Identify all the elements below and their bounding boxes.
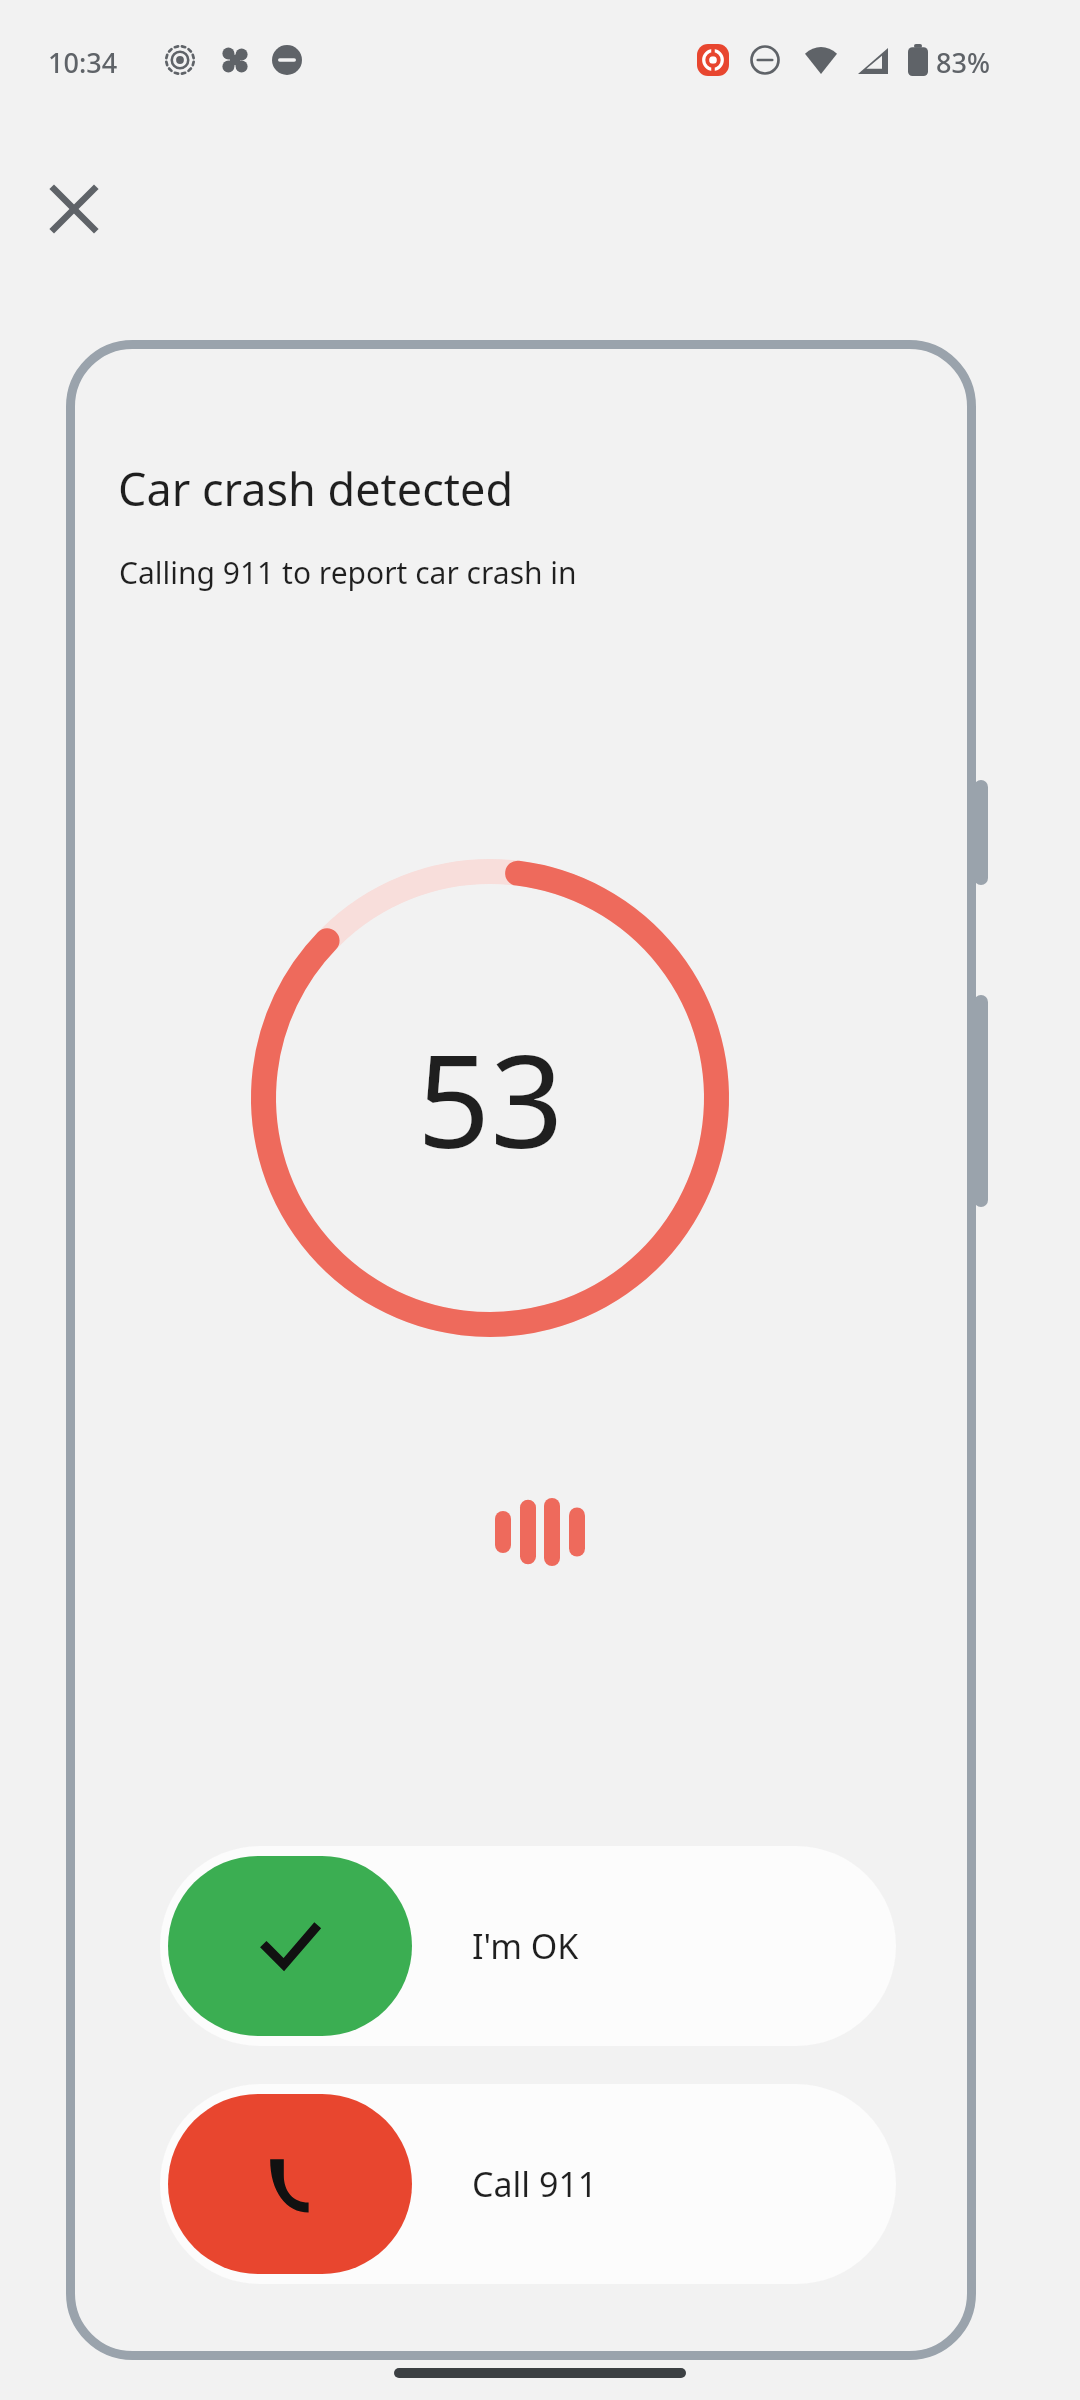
staticText: Calling 911 to report car crash in [119, 552, 577, 593]
button[interactable]: Call 911 [160, 2084, 896, 2284]
button[interactable]: I'm OK [160, 1846, 896, 2046]
staticText: Call 911 [472, 2161, 598, 2207]
staticText: 53 [417, 1011, 564, 1185]
staticText: Car crash detected [118, 458, 514, 519]
staticText: 83% [936, 44, 990, 81]
staticText: 10:34 [48, 44, 118, 81]
button[interactable]: Close [28, 163, 120, 255]
staticText: I'm OK [472, 1923, 579, 1969]
